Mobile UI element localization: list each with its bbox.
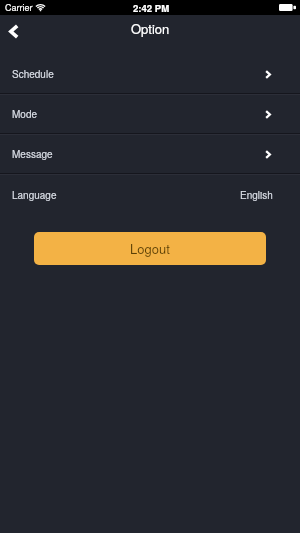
button[interactable]: Message — [0, 135, 300, 173]
button[interactable]: Back — [0, 15, 28, 48]
button[interactable]: Logout — [34, 232, 266, 265]
staticText: 2:42 PM — [133, 1, 170, 15]
button[interactable]: Language — [0, 175, 300, 215]
staticText: Option — [131, 19, 170, 38]
staticText: Message — [12, 147, 53, 161]
button[interactable]: Schedule — [0, 55, 300, 93]
button[interactable]: Mode — [0, 95, 300, 133]
staticText: Mode — [12, 107, 38, 121]
staticText: Logout — [130, 239, 170, 258]
staticText: Language — [12, 188, 57, 202]
other: Battery — [279, 4, 296, 11]
staticText: English — [240, 188, 273, 202]
staticText: Carrier — [5, 1, 33, 14]
staticText: Schedule — [12, 67, 54, 81]
